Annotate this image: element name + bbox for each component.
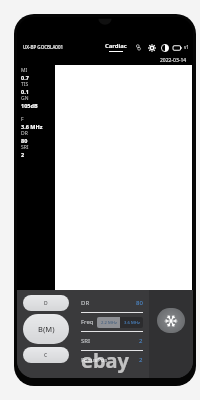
button[interactable]: B(M) bbox=[23, 314, 69, 344]
staticText: 2 bbox=[21, 151, 25, 158]
staticText: D bbox=[44, 300, 48, 307]
staticText: 0.7 bbox=[21, 74, 29, 81]
staticText: 3.6 MHz bbox=[21, 123, 43, 130]
staticText: v1 bbox=[184, 44, 189, 50]
button[interactable]: Battery bbox=[173, 43, 182, 52]
button[interactable]: 3.6 MHz bbox=[120, 317, 143, 328]
staticText: UX-BP GOCBLA001 bbox=[23, 44, 64, 50]
button[interactable]: Settings bbox=[147, 43, 156, 52]
button[interactable]: FocusPos bbox=[81, 351, 143, 369]
staticText: 2022-03-14 bbox=[160, 57, 187, 64]
button[interactable]: D bbox=[23, 295, 69, 311]
staticText: 105dB bbox=[21, 102, 38, 109]
button[interactable]: 2.2 MHz bbox=[97, 317, 120, 328]
staticText: Freq bbox=[81, 318, 94, 326]
staticText: 80 bbox=[136, 299, 143, 307]
staticText: TIS bbox=[21, 81, 29, 88]
button[interactable]: SRI bbox=[81, 332, 143, 350]
staticText: ebay bbox=[81, 347, 129, 374]
staticText: 80 bbox=[21, 137, 28, 144]
staticText: 3.6 MHz bbox=[124, 320, 140, 326]
staticText: F bbox=[21, 116, 24, 123]
button[interactable]: Contrast bbox=[160, 43, 169, 52]
staticText: SRI bbox=[81, 337, 91, 345]
staticText: C bbox=[44, 352, 48, 359]
staticText: 2.2 MHz bbox=[101, 320, 117, 326]
button[interactable]: DR bbox=[81, 294, 143, 312]
button[interactable]: C bbox=[23, 347, 69, 363]
staticText: 2 bbox=[139, 356, 143, 364]
staticText: Cardiac bbox=[105, 42, 127, 50]
button[interactable]: Cardiac bbox=[103, 42, 129, 52]
staticText: 0.1 bbox=[21, 88, 29, 95]
staticText: B(M) bbox=[38, 324, 55, 334]
staticText: DR bbox=[21, 130, 28, 137]
button[interactable]: Probe bbox=[134, 43, 143, 52]
staticText: DR bbox=[81, 299, 90, 307]
button[interactable]: Freeze bbox=[157, 308, 185, 333]
staticText: FocusPos bbox=[81, 356, 108, 364]
staticText: 2 bbox=[139, 337, 143, 345]
staticText: GN bbox=[21, 95, 29, 102]
staticText: SRI bbox=[21, 144, 29, 151]
staticText: MI bbox=[21, 67, 28, 74]
